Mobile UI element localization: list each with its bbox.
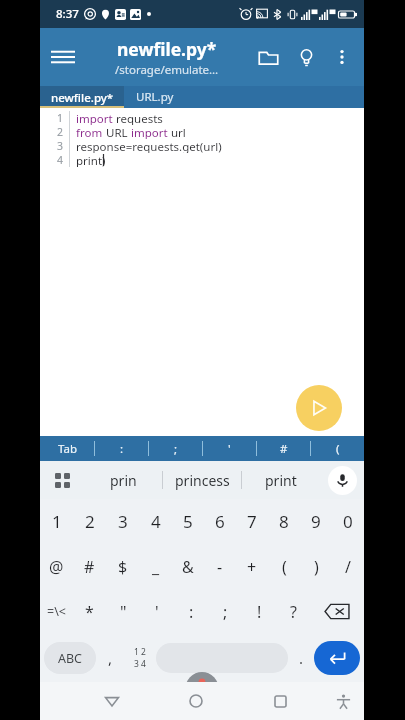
staticText: ' [155,601,159,623]
staticText: ; [174,441,178,457]
staticText: & [182,556,194,578]
button[interactable]: ! [242,589,276,634]
button[interactable]: princess [163,461,241,499]
button[interactable]: ' [140,589,174,634]
staticText: 2 [57,125,64,139]
button[interactable]: & [172,544,204,589]
button[interactable]: # [257,436,310,461]
staticText: 8 [279,510,289,533]
button[interactable]: 3 [106,499,139,544]
staticText: 9 [311,510,321,533]
button[interactable]: _ [139,544,172,589]
button[interactable]: 1 [40,499,73,544]
staticText: ( [282,556,287,578]
staticText: 5 [183,510,193,533]
staticText: ) [314,556,319,578]
button[interactable]: 7 [236,499,268,544]
staticText: / [345,556,351,578]
button[interactable]: $ [106,544,139,589]
button[interactable]: # [73,544,106,589]
button[interactable]: Keyboard options [40,461,84,499]
staticText: , [108,648,113,668]
button[interactable]: ABC [44,642,96,674]
button[interactable]: ? [276,589,310,634]
staticText: : [189,601,194,623]
staticText: 8:37 [56,6,79,22]
button[interactable]: Home [154,682,238,720]
staticText: ? [290,601,297,623]
button[interactable]: ) [300,544,332,589]
staticText: princess [175,471,230,490]
staticText: import [76,111,113,125]
button[interactable]: Run [296,385,342,431]
button[interactable]: =\< [40,589,73,634]
button[interactable]: Enter [314,641,360,675]
button[interactable]: 8 [268,499,300,544]
button[interactable]: . [288,634,314,682]
button[interactable]: + [236,544,268,589]
button[interactable]: Recent apps [238,682,322,720]
button[interactable]: ; [208,589,242,634]
button[interactable]: ' [203,436,256,461]
staticText: url [168,125,186,139]
staticText: 3 4 [134,658,146,670]
button[interactable]: newfile.py* [40,86,124,108]
staticText: 1 [52,510,62,533]
button[interactable]: 9 [300,499,332,544]
staticText: URL.py [136,89,174,105]
button[interactable]: Tab [40,436,94,461]
button[interactable]: * [73,589,106,634]
button[interactable]: 6 [204,499,236,544]
button[interactable]: Open file [248,37,288,77]
button[interactable]: : [174,589,208,634]
staticText: Tab [58,441,77,457]
staticText: 1 [57,111,64,125]
staticText: newfile.py* [51,90,114,106]
button[interactable]: Numbers [124,634,156,682]
button[interactable]: ( [311,436,364,461]
staticText: : [120,441,124,457]
staticText: _ [152,556,160,578]
button[interactable]: / [332,544,364,589]
button[interactable]: : [95,436,148,461]
button[interactable]: , [96,634,124,682]
button[interactable]: Voice input [320,461,364,499]
staticText: requests [113,111,163,125]
staticText: 0 [343,510,353,533]
staticText: newfile.py* [117,37,217,61]
button[interactable]: More options [324,39,360,75]
staticText: prin [110,471,137,490]
staticText: . [299,648,304,668]
button[interactable]: Accessibility [322,682,364,720]
staticText: 3 [118,510,128,533]
button[interactable]: " [106,589,140,634]
staticText: # [84,556,95,578]
button[interactable]: 0 [332,499,364,544]
staticText: response=requests.get(url) [76,139,222,153]
staticText: - [217,556,223,578]
button[interactable]: 5 [172,499,204,544]
button[interactable]: ( [268,544,300,589]
button[interactable]: Back [70,682,154,720]
staticText: + [247,556,257,578]
button[interactable]: prin [84,461,162,499]
staticText: * [85,601,94,623]
staticText: $ [118,556,128,578]
button[interactable]: @ [40,544,73,589]
button[interactable]: Backspace [310,589,364,634]
button[interactable]: 2 [73,499,106,544]
button[interactable]: ; [149,436,202,461]
button[interactable]: Hints [288,39,324,75]
button[interactable]: Open navigation menu [40,34,86,80]
staticText: /storage/emulate… [115,62,219,78]
button[interactable]: print [242,461,320,499]
button[interactable]: URL.py [124,86,186,108]
button[interactable]: Space [156,643,288,673]
staticText: 6 [215,510,225,533]
button[interactable]: 4 [139,499,172,544]
button[interactable]: - [204,544,236,589]
staticText: URL [103,125,131,139]
staticText: # [280,441,288,457]
button[interactable]: newfile.py* [86,37,248,78]
staticText: 1 2 [134,646,146,658]
